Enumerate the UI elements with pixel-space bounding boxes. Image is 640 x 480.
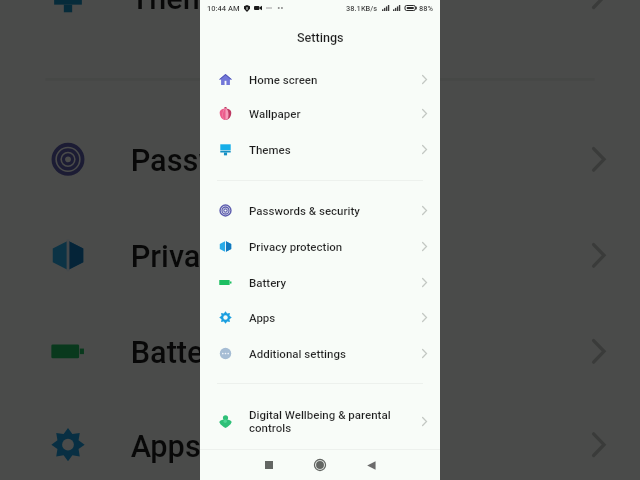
button[interactable]: Home bbox=[305, 450, 335, 480]
staticText: Digital Wellbeing & parental controls bbox=[249, 408, 401, 434]
staticText: Home screen bbox=[249, 73, 401, 86]
staticText: 88% bbox=[419, 4, 434, 13]
button[interactable]: Themes bbox=[200, 131, 440, 167]
button[interactable]: Battery bbox=[0, 302, 640, 398]
button[interactable]: Back bbox=[356, 450, 386, 480]
button[interactable]: Privacy protection bbox=[200, 228, 440, 264]
staticText: 10:44 AM bbox=[207, 4, 240, 13]
staticText: Apps bbox=[249, 311, 401, 324]
button[interactable]: Privacy protection bbox=[0, 206, 640, 302]
button[interactable]: Passwords & security bbox=[200, 192, 440, 228]
staticText: Themes bbox=[249, 143, 401, 156]
staticText: Battery bbox=[249, 276, 401, 289]
staticText: Passwords & security bbox=[131, 142, 536, 177]
staticText: 38.1KB/s bbox=[346, 4, 378, 13]
button[interactable]: Themes bbox=[0, 0, 640, 43]
button[interactable]: Passwords & security bbox=[0, 110, 640, 206]
button[interactable]: Digital Wellbeing & parental controls bbox=[200, 399, 440, 443]
staticText: Privacy protection bbox=[249, 240, 401, 253]
staticText: Themes bbox=[131, 0, 536, 14]
staticText: Privacy protection bbox=[131, 238, 536, 273]
staticText: Battery bbox=[131, 334, 536, 369]
button[interactable]: Apps bbox=[200, 299, 440, 335]
button[interactable]: Apps bbox=[0, 395, 640, 480]
button[interactable]: Home screen bbox=[200, 61, 440, 97]
staticText: Additional settings bbox=[249, 347, 401, 360]
button[interactable]: Recent apps bbox=[254, 450, 284, 480]
staticText: Settings bbox=[297, 30, 344, 45]
staticText: Wallpaper bbox=[249, 107, 401, 120]
button[interactable]: Battery bbox=[200, 264, 440, 300]
staticText: Apps bbox=[131, 427, 536, 462]
button[interactable]: Additional settings bbox=[200, 335, 440, 371]
button[interactable]: Wallpaper bbox=[200, 95, 440, 131]
staticText: Passwords & security bbox=[249, 204, 401, 217]
